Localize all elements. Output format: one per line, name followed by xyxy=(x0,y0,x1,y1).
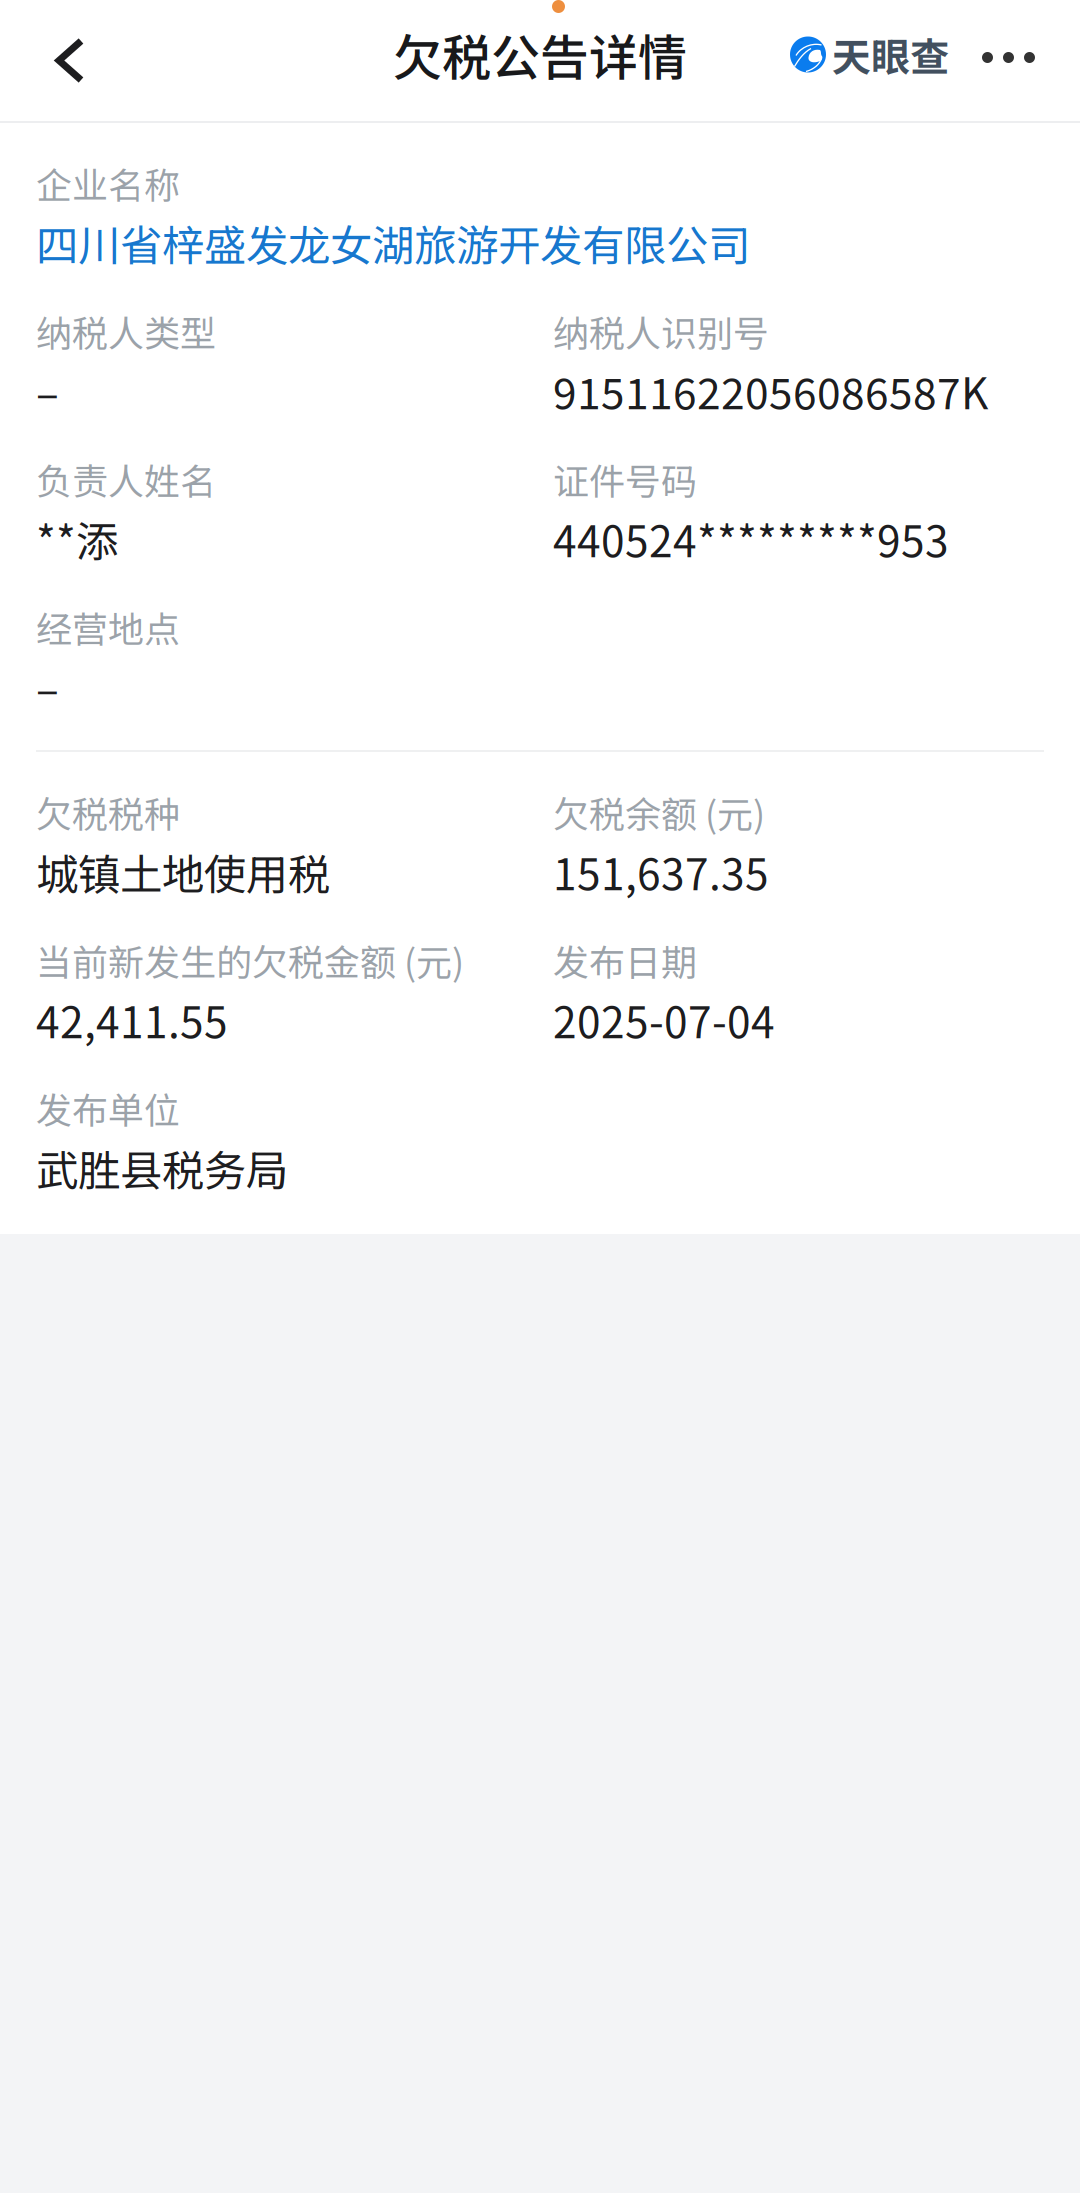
staticText: 151,637.35 xyxy=(553,841,769,902)
staticText: 城镇土地使用税 xyxy=(36,841,330,902)
staticText: 经营地点 xyxy=(36,601,180,653)
staticText: 武胜县税务局 xyxy=(36,1137,288,1198)
staticText: 欠税税种 xyxy=(36,786,180,838)
staticText: – xyxy=(36,360,59,421)
staticText: 当前新发生的欠税金额 (元) xyxy=(36,934,464,986)
staticText: 42,411.55 xyxy=(36,989,228,1050)
staticText: 欠税余额 (元) xyxy=(553,786,765,838)
staticText: 发布单位 xyxy=(36,1082,180,1134)
staticText: 证件号码 xyxy=(553,453,697,505)
staticText: 440524*********953 xyxy=(553,508,949,569)
staticText: 纳税人识别号 xyxy=(553,305,769,357)
button[interactable]: 天眼查 xyxy=(790,0,949,115)
staticText: 纳税人类型 xyxy=(36,305,216,357)
staticText: 天眼查 xyxy=(832,26,949,83)
staticText: – xyxy=(36,656,59,717)
staticText: 91511622056086587K xyxy=(553,360,988,421)
staticText: 四川省梓盛发龙女湖旅游开发有限公司 xyxy=(36,212,750,273)
staticText: **添 xyxy=(36,508,118,569)
staticText: 企业名称 xyxy=(36,157,180,209)
button[interactable]: 四川省梓盛发龙女湖旅游开发有限公司 xyxy=(36,212,1044,272)
staticText: 欠税公告详情 xyxy=(393,19,687,90)
staticText: 负责人姓名 xyxy=(36,453,216,505)
staticText: 2025-07-04 xyxy=(553,989,775,1050)
staticText: 发布日期 xyxy=(553,934,697,986)
button[interactable]: 返回 xyxy=(0,0,112,121)
button[interactable]: 更多 xyxy=(949,0,1080,115)
